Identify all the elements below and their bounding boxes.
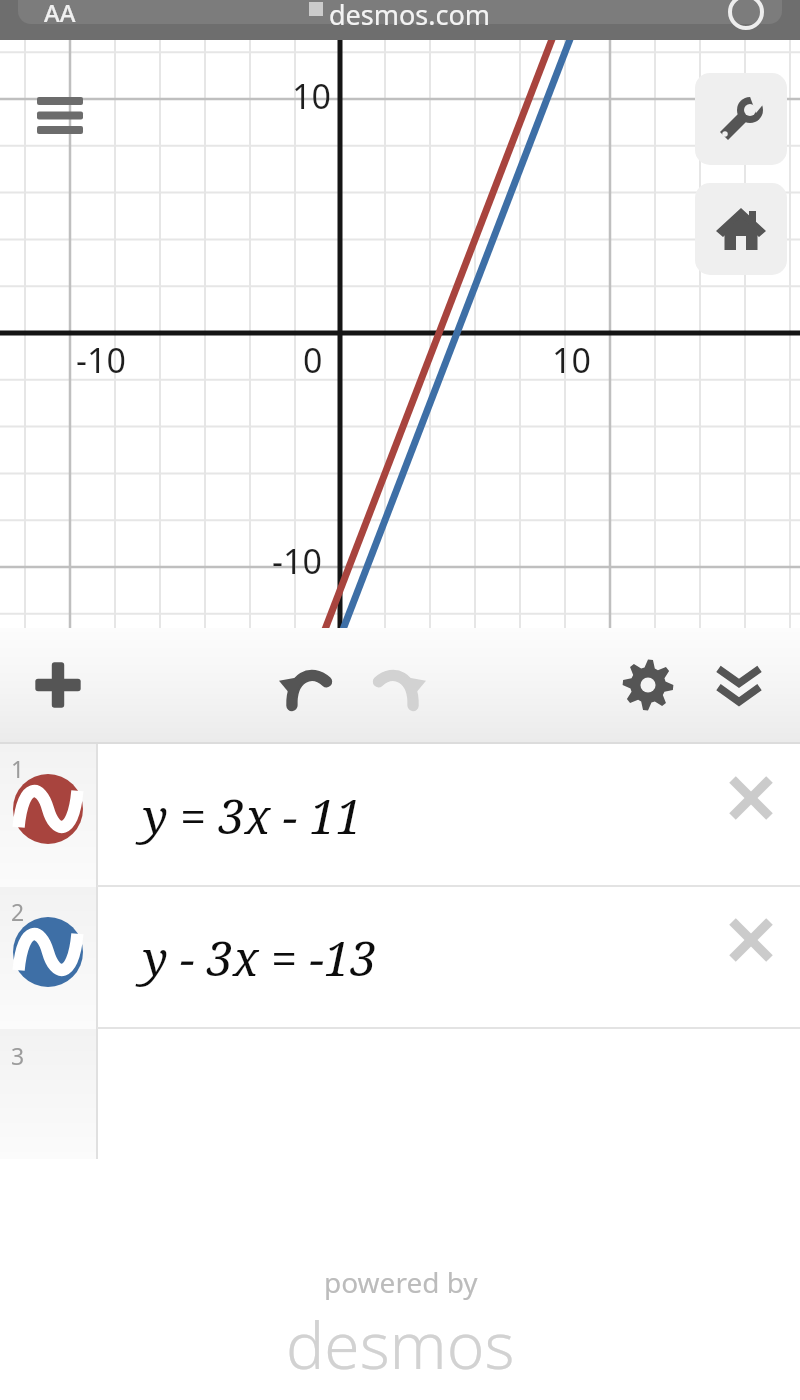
staticText: powered by bbox=[324, 1263, 478, 1301]
button[interactable]: Delete expression 1 bbox=[718, 765, 784, 831]
button[interactable]: Graph settings bbox=[695, 73, 787, 165]
button[interactable]: Add expression bbox=[26, 628, 90, 742]
button[interactable]: Collapse keypad bbox=[707, 628, 771, 742]
staticText: y − 3x = −13 bbox=[143, 926, 377, 990]
button[interactable]: Home bbox=[695, 183, 787, 275]
staticText: 0 bbox=[303, 337, 323, 383]
staticText: 10 bbox=[552, 337, 591, 383]
button[interactable]: Redo bbox=[367, 628, 431, 742]
staticText: desmos.com bbox=[329, 0, 491, 33]
staticText: y = 3x − 11 bbox=[143, 784, 363, 848]
staticText: 3 bbox=[11, 1040, 25, 1071]
button[interactable]: Delete expression 2 bbox=[718, 907, 784, 973]
button[interactable]: Undo bbox=[274, 628, 338, 742]
button[interactable]: Menu bbox=[30, 92, 92, 142]
staticText: desmos bbox=[286, 1301, 515, 1388]
staticText: 10 bbox=[292, 73, 331, 119]
staticText: 2 bbox=[11, 896, 25, 927]
staticText: -10 bbox=[76, 337, 126, 383]
button[interactable]: Settings bbox=[616, 628, 680, 742]
button[interactable]: 3 bbox=[0, 1029, 800, 1159]
staticText: -10 bbox=[272, 538, 322, 584]
staticText: 1 bbox=[11, 753, 25, 784]
button[interactable]: 1 bbox=[0, 744, 800, 887]
staticText: AA bbox=[44, 0, 76, 29]
button[interactable]: 2 bbox=[0, 887, 800, 1029]
